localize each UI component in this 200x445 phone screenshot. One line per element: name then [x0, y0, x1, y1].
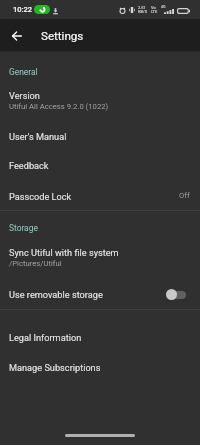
staticText: Legal Information	[9, 332, 82, 343]
staticText: 2.51 KB/S	[138, 5, 148, 14]
staticText: Storage	[9, 223, 38, 233]
staticText: Use removable storage	[9, 289, 103, 300]
staticText: General	[9, 67, 38, 77]
button[interactable]: Use removable storage	[0, 285, 200, 314]
button[interactable]: Legal Information	[0, 328, 200, 357]
button[interactable]: Feedback	[0, 156, 200, 185]
staticText: Off	[179, 191, 190, 200]
staticText: 4G	[161, 5, 166, 9]
staticText: User's Manual	[9, 131, 67, 142]
button[interactable]: Manage Subscriptions	[0, 358, 200, 387]
staticText: Feedback	[9, 160, 49, 171]
staticText: 10:22	[13, 5, 33, 14]
staticText: Settings	[41, 29, 84, 43]
staticText: /Pictures/Utiful	[9, 259, 62, 268]
staticText: Passcode Lock	[9, 191, 72, 202]
button[interactable]: Back	[5, 24, 28, 47]
button[interactable]: Passcode Lock	[0, 187, 200, 216]
staticText: Version	[9, 90, 40, 101]
button[interactable]: Sync Utiful with file system	[0, 243, 200, 272]
staticText: Manage Subscriptions	[9, 362, 101, 373]
staticText: Sync Utiful with file system	[9, 247, 119, 258]
button[interactable]: User's Manual	[0, 127, 200, 156]
staticText: Vo LTE	[151, 5, 158, 14]
staticText: Utiful All Access 9.2.0 (1022)	[9, 102, 109, 111]
button[interactable]: Version	[0, 86, 200, 115]
